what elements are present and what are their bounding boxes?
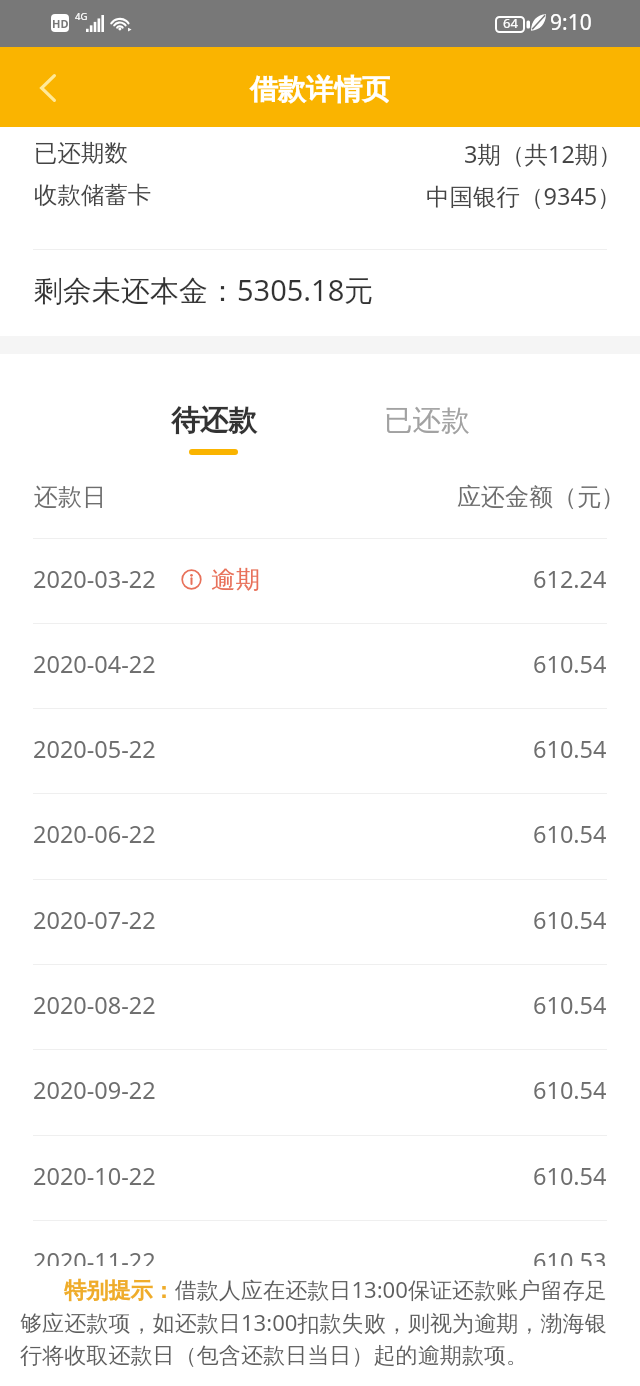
staticText: 610.54: [533, 733, 607, 765]
staticText: 612.24: [533, 563, 607, 595]
staticText: 610.54: [533, 989, 607, 1021]
staticText: 4G: [75, 10, 88, 23]
staticText: 还款日: [34, 482, 106, 512]
staticText: 剩余未还本金：5305.18元: [34, 270, 374, 310]
staticText: HD: [52, 16, 69, 31]
staticText: 3期（共12期）: [464, 138, 622, 170]
button[interactable]: Back: [0, 47, 96, 127]
staticText: 待还款: [171, 403, 257, 439]
staticText: 逾期: [211, 564, 260, 595]
staticText: 2020-04-22: [33, 648, 156, 680]
staticText: 2020-11-22: [33, 1245, 156, 1277]
staticText: 特别提示：借款人应在还款日13:00保证还款账户留存足够应还款项，如还款日13:…: [20, 1274, 608, 1369]
button[interactable]: 2020-09-22: [0, 1048, 640, 1132]
button[interactable]: 2020-05-22: [0, 707, 640, 791]
staticText: 2020-08-22: [33, 989, 156, 1021]
staticText: 2020-06-22: [33, 818, 156, 850]
staticText: 2020-03-22: [33, 563, 156, 595]
button[interactable]: 2020-11-22: [0, 1219, 640, 1303]
staticText: 2020-05-22: [33, 733, 156, 765]
button[interactable]: 待还款: [145, 382, 283, 464]
staticText: 610.54: [533, 648, 607, 680]
staticText: 610.54: [533, 904, 607, 936]
staticText: 2020-07-22: [33, 904, 156, 936]
staticText: 借款详情页: [250, 72, 390, 107]
staticText: 64: [503, 14, 518, 32]
button[interactable]: 2020-03-22: [0, 537, 640, 621]
staticText: 已还期数: [34, 138, 128, 168]
staticText: 610.53: [533, 1245, 607, 1277]
button[interactable]: 2020-06-22: [0, 792, 640, 876]
button[interactable]: 2020-07-22: [0, 878, 640, 962]
staticText: 610.54: [533, 1160, 607, 1192]
button[interactable]: 已还款: [358, 382, 496, 464]
button[interactable]: 2020-04-22: [0, 622, 640, 706]
staticText: 已还款: [384, 403, 470, 439]
staticText: 收款储蓄卡: [34, 180, 152, 210]
staticText: 9:10: [550, 8, 592, 37]
staticText: 中国银行（9345）: [426, 180, 621, 212]
staticText: 2020-10-22: [33, 1160, 156, 1192]
button[interactable]: 2020-08-22: [0, 963, 640, 1047]
button[interactable]: 2020-10-22: [0, 1134, 640, 1218]
staticText: 610.54: [533, 818, 607, 850]
staticText: 610.54: [533, 1074, 607, 1106]
staticText: 应还金额（元）: [457, 482, 625, 512]
staticText: 2020-09-22: [33, 1074, 156, 1106]
